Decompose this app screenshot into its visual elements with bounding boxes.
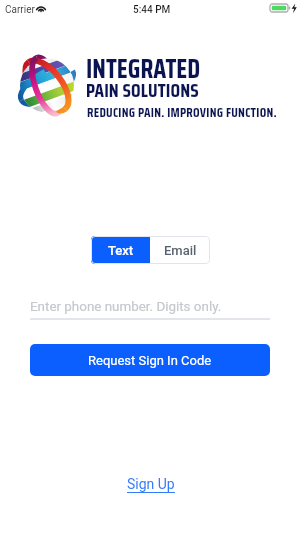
staticText: INTEGRATED bbox=[86, 48, 201, 89]
staticText: Email bbox=[164, 243, 197, 258]
staticText: Sign Up bbox=[127, 476, 175, 492]
button[interactable]: Text bbox=[91, 236, 150, 264]
button[interactable]: Sign Up bbox=[121, 473, 180, 497]
staticText: REDUCING PAIN. IMPROVING FUNCTION. bbox=[87, 102, 300, 122]
staticText: Request Sign In Code bbox=[88, 353, 212, 368]
button[interactable]: Request Sign In Code bbox=[30, 344, 270, 376]
staticText: Carrier bbox=[5, 4, 35, 16]
staticText: 5:44 PM bbox=[133, 4, 171, 16]
staticText: PAIN SOLUTIONS bbox=[86, 75, 300, 105]
staticText: Enter phone number. Digits only. bbox=[30, 299, 222, 315]
button[interactable]: Email bbox=[150, 236, 210, 264]
staticText: Text bbox=[108, 243, 134, 258]
